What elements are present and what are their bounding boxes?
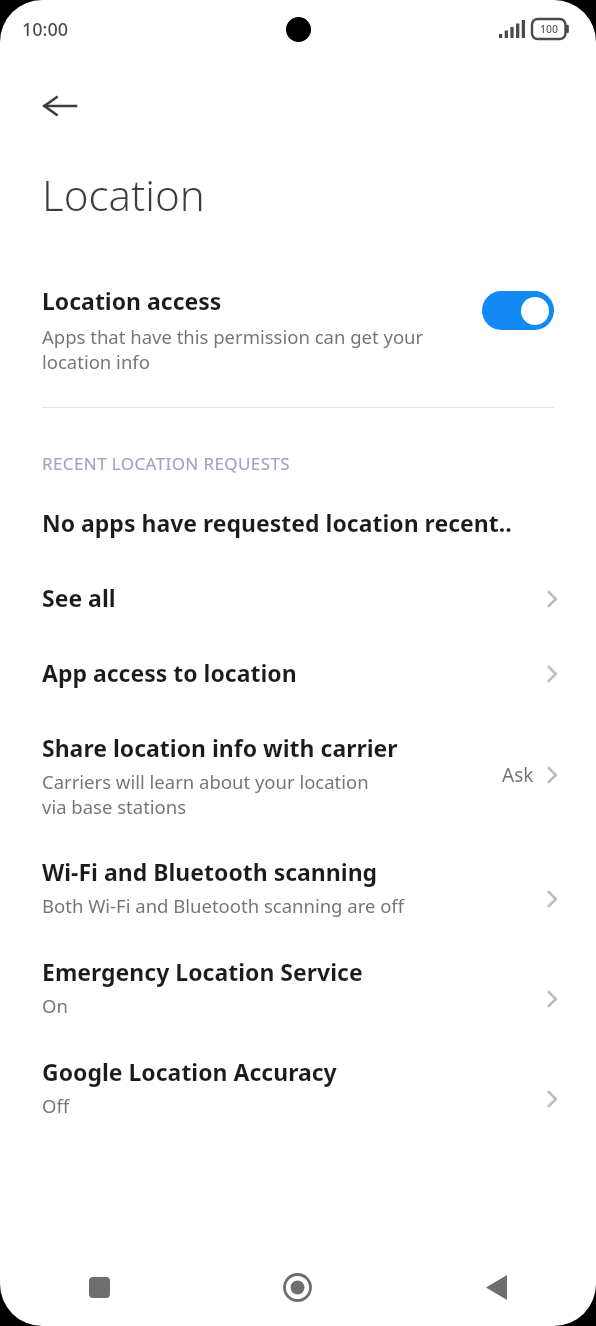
staticText: Both Wi-Fi and Bluetooth scanning are of…: [42, 893, 542, 918]
staticText: Ask: [502, 762, 534, 788]
staticText: See all: [42, 582, 116, 613]
staticText: 10:00: [22, 17, 69, 42]
staticText: Off: [42, 1093, 542, 1118]
button[interactable]: Home: [198, 1248, 397, 1326]
staticText: Google Location Accuracy: [42, 1056, 337, 1087]
button[interactable]: Back: [24, 70, 96, 142]
button[interactable]: Share location info with carrier: [0, 732, 596, 820]
staticText: Wi-Fi and Bluetooth scanning: [42, 856, 378, 887]
button[interactable]: Emergency Location Service: [0, 956, 596, 1018]
staticText: Emergency Location Service: [42, 956, 363, 987]
button[interactable]: App access to location: [0, 657, 596, 688]
button[interactable]: Google Location Accuracy: [0, 1056, 596, 1118]
button[interactable]: Location access toggle: [482, 291, 554, 330]
staticText: Carriers will learn about your location …: [42, 769, 382, 820]
staticText: Location: [42, 166, 205, 223]
staticText: App access to location: [42, 657, 297, 688]
staticText: Location access: [42, 285, 222, 316]
staticText: 100: [540, 22, 559, 36]
button[interactable]: Recent apps: [0, 1248, 198, 1326]
button[interactable]: Wi-Fi and Bluetooth scanning: [0, 856, 596, 918]
button[interactable]: No apps have requested location recent..: [0, 507, 596, 538]
staticText: RECENT LOCATION REQUESTS: [42, 452, 291, 475]
staticText: Apps that have this permission can get y…: [42, 324, 472, 375]
staticText: No apps have requested location recent..: [42, 507, 512, 538]
button[interactable]: Location access: [0, 285, 596, 375]
button[interactable]: See all: [0, 582, 596, 613]
button[interactable]: Back: [397, 1248, 596, 1326]
staticText: Share location info with carrier: [42, 732, 398, 763]
staticText: On: [42, 993, 542, 1018]
